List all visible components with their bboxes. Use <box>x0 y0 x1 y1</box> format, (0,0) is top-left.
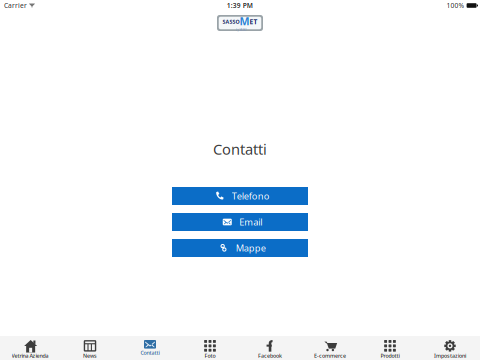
staticText: Carrier <box>4 1 27 10</box>
button[interactable]: E-commerce <box>300 336 360 360</box>
staticText: by SASSO <box>235 28 246 31</box>
button[interactable]: Mappe <box>172 239 308 257</box>
staticText: 100% <box>447 1 465 10</box>
staticText: Contatti <box>213 139 267 159</box>
button[interactable]: Telefono <box>172 187 308 205</box>
button[interactable]: Facebook <box>240 336 300 360</box>
staticText: Vetrina Azienda <box>11 352 48 359</box>
button[interactable]: Foto <box>180 336 240 360</box>
staticText: Email <box>239 216 262 228</box>
staticText: ET <box>249 17 257 26</box>
staticText: M <box>239 14 249 28</box>
button[interactable]: Vetrina Azienda <box>0 336 60 360</box>
button[interactable]: Prodotti <box>360 336 420 360</box>
staticText: Foto <box>204 352 215 359</box>
staticText: Impostazioni <box>434 352 466 359</box>
button[interactable]: Impostazioni <box>420 336 480 360</box>
staticText: SASSO <box>222 18 239 25</box>
staticText: Mappe <box>236 242 266 254</box>
button[interactable]: Contatti <box>120 336 180 360</box>
staticText: News <box>83 352 97 359</box>
staticText: Prodotti <box>380 352 399 359</box>
staticText: Telefono <box>232 190 270 202</box>
staticText: Contatti <box>140 349 159 356</box>
button[interactable]: News <box>60 336 120 360</box>
button[interactable]: Email <box>172 213 308 231</box>
staticText: Facebook <box>258 352 282 359</box>
staticText: 1:39 PM <box>227 1 253 10</box>
staticText: E-commerce <box>314 352 346 359</box>
